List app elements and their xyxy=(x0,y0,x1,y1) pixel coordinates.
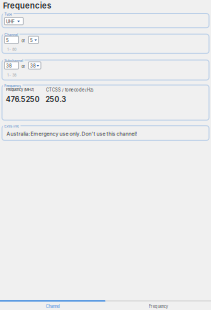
staticText: 5 xyxy=(30,38,33,43)
staticText: 1 - 38 xyxy=(7,73,16,77)
staticText: Type xyxy=(4,12,12,16)
staticText: 38 xyxy=(6,63,12,69)
staticText: UHF xyxy=(6,19,15,24)
staticText: Frequency xyxy=(149,304,168,309)
staticText: Australia: Emergency use only. Don't use… xyxy=(6,131,136,137)
staticText: 250.3 xyxy=(46,95,67,104)
staticText: of xyxy=(21,39,24,43)
staticText: 1 - 80 xyxy=(7,47,16,52)
staticText: 5 xyxy=(6,38,9,43)
staticText: Frequency xyxy=(4,83,21,88)
staticText: CTCSS / tone code (Hz) xyxy=(46,87,94,92)
button[interactable]: Channel xyxy=(0,0,105,8)
staticText: 476.5250 xyxy=(6,95,40,104)
staticText: Frequency (MHz) xyxy=(6,87,34,92)
staticText: Frequencies xyxy=(3,1,51,10)
staticText: Subchannel xyxy=(4,58,23,63)
staticText: Extra info xyxy=(4,124,19,128)
staticText: of xyxy=(21,64,24,69)
staticText: Channel xyxy=(4,33,18,37)
button[interactable]: Frequency xyxy=(0,0,105,8)
button[interactable]: 5 xyxy=(0,0,10,7)
staticText: Channel xyxy=(46,304,60,309)
button[interactable]: UHF xyxy=(0,0,19,7)
button[interactable]: 38 xyxy=(0,0,12,7)
staticText: 38 xyxy=(30,63,36,69)
